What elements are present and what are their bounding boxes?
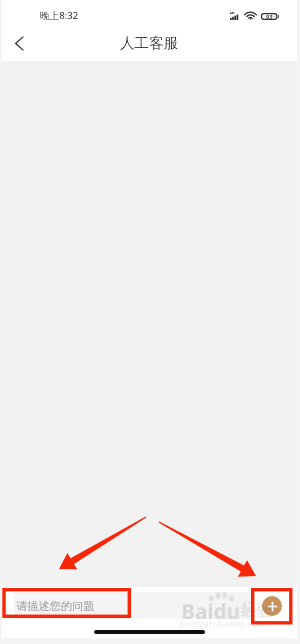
staticText: jingyan.baidu.com <box>180 617 268 630</box>
staticText: 人工客服 <box>120 34 179 52</box>
button[interactable]: Back <box>2 26 36 60</box>
button[interactable]: Add attachment <box>262 596 282 616</box>
staticText: 93 <box>266 13 273 20</box>
staticText: 经验 <box>241 601 273 621</box>
staticText: 晚上8:32 <box>40 9 79 22</box>
staticText: Baidu <box>182 598 239 625</box>
staticText: Baidu <box>181 597 241 626</box>
staticText: 请描述您的问题 <box>16 599 95 613</box>
button[interactable]: 请描述您的问题 <box>14 592 252 619</box>
